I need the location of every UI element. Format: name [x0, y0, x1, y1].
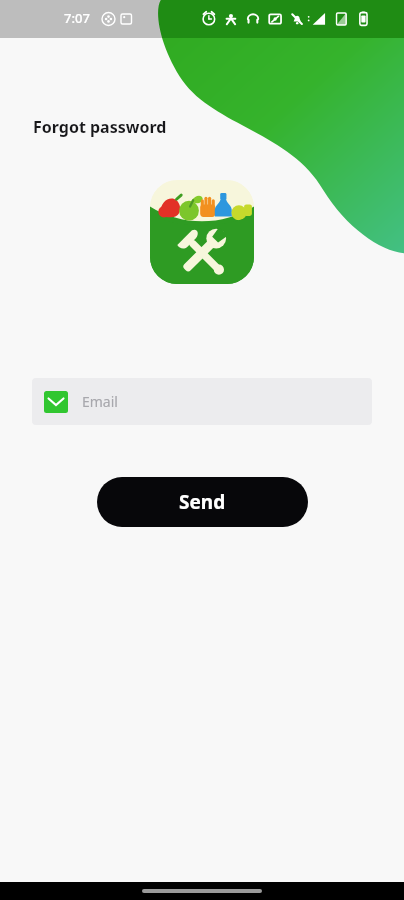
staticText: Forgot password [33, 116, 167, 138]
staticText: Send [179, 489, 226, 515]
staticText: Email [82, 392, 118, 411]
button[interactable]: Email [32, 378, 372, 425]
staticText: 7:07 [64, 9, 90, 27]
button[interactable]: Send [97, 477, 308, 527]
